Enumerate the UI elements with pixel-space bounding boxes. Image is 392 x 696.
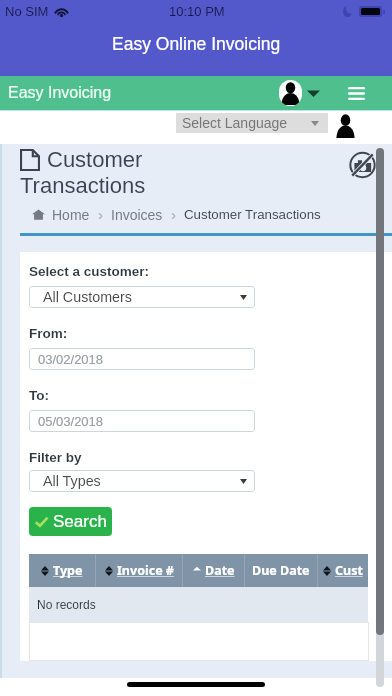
staticText: › xyxy=(98,206,103,223)
button[interactable]: Home xyxy=(52,207,90,223)
staticText: 05/03/2018 xyxy=(38,414,104,429)
staticText: › xyxy=(171,206,176,223)
staticText: Invoice # xyxy=(117,562,174,579)
button[interactable]: Due Date xyxy=(245,554,317,587)
staticText: Search xyxy=(53,512,107,531)
staticText: Filter by xyxy=(29,450,82,465)
staticText: 10:10 PM xyxy=(169,4,225,19)
staticText: Cust xyxy=(335,562,363,579)
button[interactable]: All Types xyxy=(29,470,255,492)
staticText: Customer Transactions xyxy=(184,207,321,222)
staticText: All Customers xyxy=(43,289,132,305)
staticText: Transactions xyxy=(20,173,146,198)
staticText: Select Language xyxy=(182,115,288,131)
button[interactable]: Select Language xyxy=(176,113,328,133)
staticText: Type xyxy=(53,562,83,579)
button[interactable]: Date xyxy=(183,554,244,587)
button[interactable]: Camera disabled xyxy=(349,151,376,179)
staticText: Due Date xyxy=(252,562,310,579)
staticText: All Types xyxy=(43,473,101,489)
button[interactable]: 05/03/2018 xyxy=(29,410,255,432)
staticText: Easy Online Invoicing xyxy=(112,34,281,54)
staticText: No SIM xyxy=(5,4,49,19)
staticText: Select a customer: xyxy=(29,264,150,279)
button[interactable]: All Customers xyxy=(29,286,255,308)
staticText: From: xyxy=(29,326,68,341)
staticText: Customer xyxy=(47,147,143,172)
button[interactable]: Search xyxy=(29,507,112,536)
button[interactable]: Invoices xyxy=(111,207,163,223)
button[interactable]: Type xyxy=(29,554,95,587)
button[interactable]: Easy Invoicing xyxy=(8,84,112,102)
staticText: No records xyxy=(37,598,96,611)
button[interactable]: Menu xyxy=(344,81,368,105)
button[interactable]: Account menu xyxy=(279,80,320,106)
button[interactable]: Invoice # xyxy=(96,554,182,587)
button[interactable]: 03/02/2018 xyxy=(29,348,255,370)
button[interactable]: Cust xyxy=(318,554,368,587)
staticText: Date xyxy=(205,562,235,579)
staticText: 03/02/2018 xyxy=(38,352,104,367)
staticText: To: xyxy=(29,388,49,403)
